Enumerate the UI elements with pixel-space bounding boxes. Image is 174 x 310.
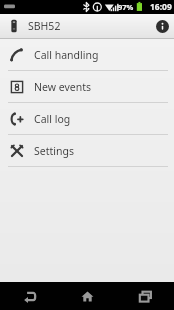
staticText: Call handling — [34, 48, 99, 62]
button[interactable]: Call log — [0, 103, 174, 134]
staticText: Call log — [34, 112, 71, 126]
button[interactable]: Back — [0, 282, 58, 310]
button[interactable]: Recent apps — [116, 282, 174, 310]
button[interactable]: Settings — [0, 135, 174, 166]
staticText: 16:09 — [150, 1, 172, 13]
button[interactable]: About — [150, 14, 174, 38]
staticText: New events — [34, 80, 91, 94]
staticText: 97% — [118, 2, 134, 12]
button[interactable]: Home — [58, 282, 116, 310]
staticText: SBH52 — [28, 19, 61, 33]
staticText: Settings — [34, 144, 74, 158]
button[interactable]: New events — [0, 71, 174, 102]
button[interactable]: Call handling — [0, 39, 174, 70]
